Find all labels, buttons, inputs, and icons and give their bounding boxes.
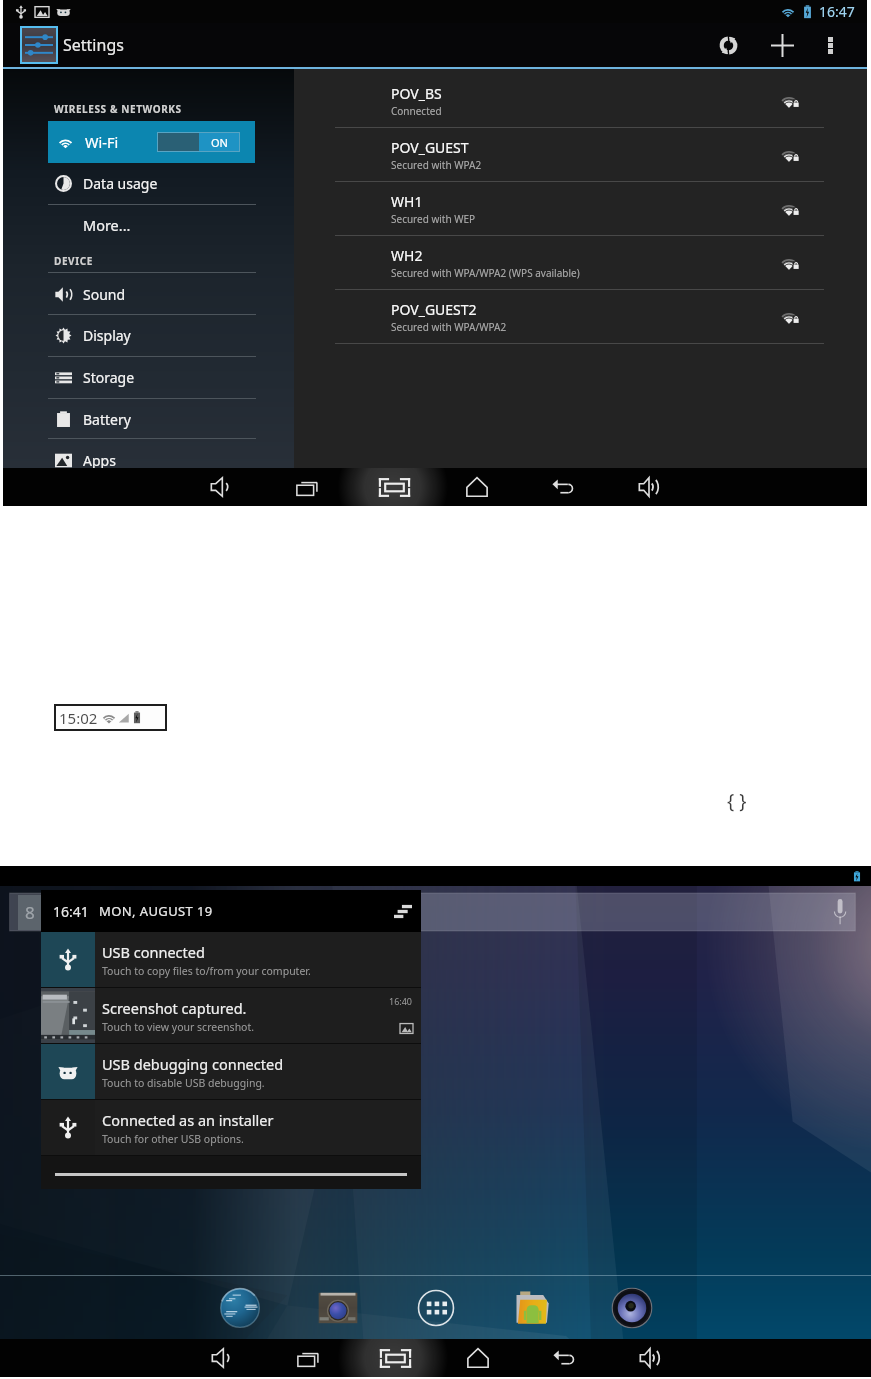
button[interactable]: Storage	[48, 357, 256, 397]
staticText: WH2	[391, 246, 423, 265]
button[interactable]: Home	[456, 468, 498, 506]
button[interactable]: Recent apps	[286, 468, 328, 506]
staticText: Storage	[83, 368, 135, 387]
button[interactable]: Music	[606, 1282, 658, 1334]
button[interactable]: Data usage	[48, 163, 256, 203]
staticText: Touch to view your screenshot.	[102, 1020, 255, 1034]
button[interactable]: Add network	[760, 23, 804, 67]
button[interactable]: POV_BS	[335, 74, 824, 127]
staticText: WH1	[391, 192, 423, 211]
staticText: { }	[727, 788, 747, 814]
staticText: 16:47	[819, 2, 855, 21]
button[interactable]: POV_GUEST	[335, 128, 824, 181]
staticText: Connected as an installer	[102, 1110, 274, 1130]
staticText: Data usage	[83, 174, 158, 193]
button[interactable]: Back	[542, 468, 584, 506]
staticText: 16:40	[389, 995, 413, 1007]
staticText: Secured with WPA/WPA2	[391, 320, 507, 334]
staticText: POV_GUEST	[391, 138, 469, 157]
button[interactable]: USB debugging connected	[41, 1044, 421, 1099]
button[interactable]: Recent apps	[287, 1339, 329, 1377]
button[interactable]: Battery	[48, 399, 256, 439]
staticText: POV_BS	[391, 84, 442, 103]
staticText: Apps	[83, 451, 116, 470]
button[interactable]: Screenshot	[373, 1339, 417, 1377]
button[interactable]: Volume down	[200, 468, 242, 506]
button[interactable]: Apps	[410, 1282, 462, 1334]
button[interactable]: Sound	[48, 274, 256, 314]
button[interactable]: Browser	[214, 1282, 266, 1334]
button[interactable]: More options	[812, 27, 848, 63]
staticText: 15:02	[59, 708, 98, 728]
button[interactable]: WH2	[335, 236, 824, 289]
button[interactable]: Home	[457, 1339, 499, 1377]
button[interactable]: Volume up	[629, 1339, 671, 1377]
button[interactable]: Quick settings	[385, 893, 421, 929]
button[interactable]: Screenshot	[372, 468, 416, 506]
staticText: MON, AUGUST 19	[99, 902, 213, 920]
staticText: Secured with WPA2	[391, 158, 482, 172]
button[interactable]: Display	[48, 315, 256, 355]
staticText: Touch to disable USB debugging.	[102, 1076, 265, 1090]
button[interactable]: More...	[48, 204, 256, 245]
staticText: Secured with WEP	[391, 212, 476, 226]
button[interactable]: Files	[508, 1282, 560, 1334]
staticText: More...	[83, 215, 131, 235]
button[interactable]: Back	[543, 1339, 585, 1377]
button[interactable]: POV_GUEST2	[335, 290, 824, 343]
button[interactable]: Wi-Fi	[48, 121, 255, 163]
staticText: Sound	[83, 285, 126, 304]
staticText: Display	[83, 326, 131, 345]
button[interactable]: Refresh	[706, 23, 750, 67]
staticText: Touch to copy files to/from your compute…	[102, 964, 311, 978]
button[interactable]: Connected as an installer	[41, 1100, 421, 1155]
button[interactable]: Wi-Fi on	[157, 132, 240, 152]
staticText: 16:41	[53, 902, 89, 921]
staticText: Connected	[391, 104, 442, 118]
staticText: Battery	[83, 410, 131, 429]
staticText: Touch for other USB options.	[102, 1132, 244, 1146]
staticText: 8	[25, 901, 35, 924]
button[interactable]: Camera	[312, 1282, 364, 1334]
button[interactable]: Screenshot captured.	[41, 988, 421, 1043]
staticText: ON	[211, 135, 228, 150]
staticText: Settings	[63, 34, 124, 56]
button[interactable]: Volume up	[628, 468, 670, 506]
button[interactable]: Apps	[48, 440, 256, 480]
staticText: USB connected	[102, 942, 205, 962]
button[interactable]: WH1	[335, 182, 824, 235]
staticText: USB debugging connected	[102, 1054, 284, 1074]
button[interactable]: Volume down	[201, 1339, 243, 1377]
staticText: Screenshot captured.	[102, 998, 247, 1018]
staticText: POV_GUEST2	[391, 300, 477, 319]
button[interactable]: USB connected	[41, 932, 421, 987]
staticText: DEVICE	[54, 254, 93, 268]
staticText: Secured with WPA/WPA2 (WPS available)	[391, 266, 580, 280]
staticText: Wi-Fi	[85, 132, 119, 152]
staticText: WIRELESS & NETWORKS	[54, 102, 182, 116]
